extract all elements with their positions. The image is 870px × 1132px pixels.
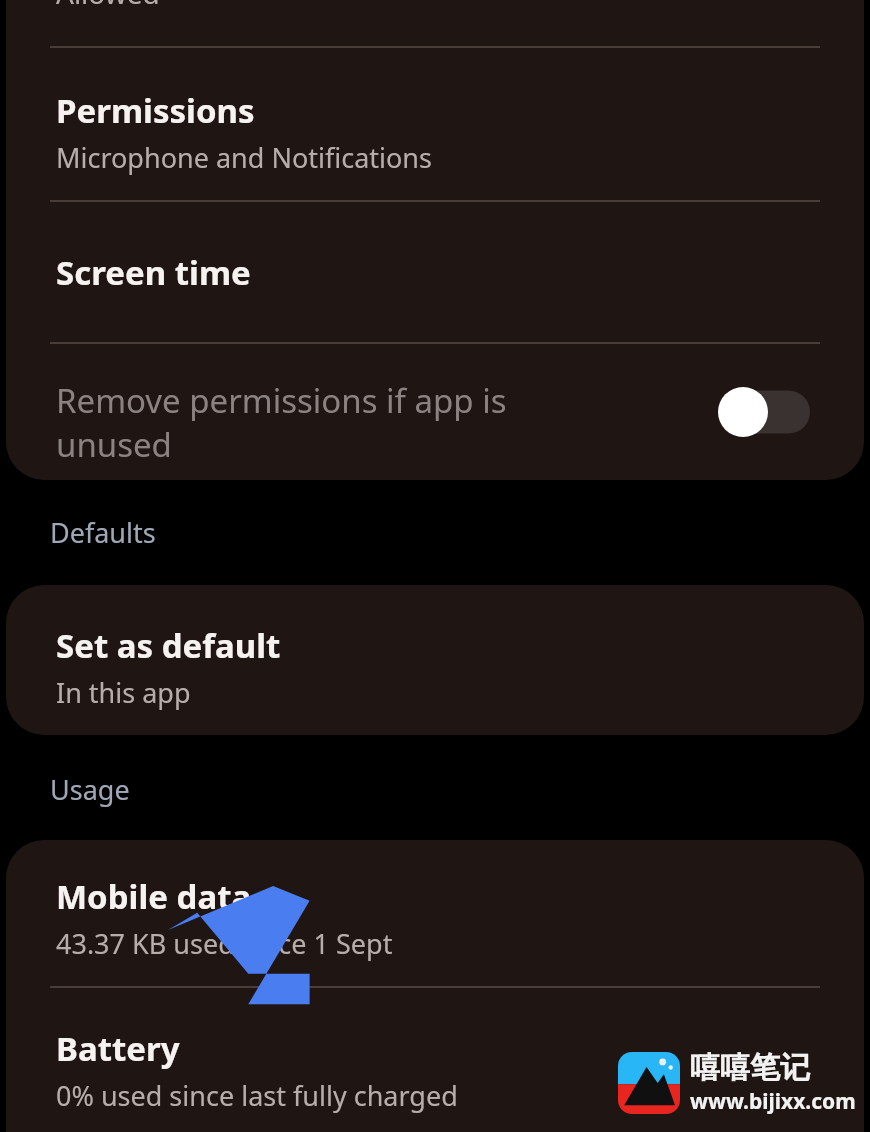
button[interactable]: Remove permissions if app is unused: [6, 344, 864, 480]
staticText: Battery: [56, 1026, 180, 1071]
staticText: 0% used since last fully charged: [56, 1077, 458, 1114]
staticText: 43.37 KB used since 1 Sept: [56, 925, 393, 962]
staticText: Usage: [50, 771, 130, 808]
button[interactable]: Permissions: [6, 48, 864, 200]
staticText: Remove permissions if app is unused: [56, 378, 507, 466]
staticText: Permissions: [56, 88, 255, 133]
staticText: Defaults: [50, 514, 156, 551]
button[interactable]: Screen time: [6, 202, 864, 342]
staticText: www.bijixx.com: [690, 1087, 856, 1116]
button[interactable]: Allowed: [6, 0, 864, 46]
staticText: Allowed: [56, 0, 160, 12]
staticText: Screen time: [56, 250, 251, 295]
button[interactable]: Battery: [6, 988, 864, 1132]
staticText: Mobile data: [56, 874, 252, 919]
button[interactable]: Mobile data: [6, 840, 864, 986]
staticText: Microphone and Notifications: [56, 139, 432, 176]
button[interactable]: Set as default: [6, 585, 864, 735]
staticText: 嘻嘻笔记: [690, 1049, 810, 1087]
staticText: In this app: [56, 674, 191, 711]
staticText: Set as default: [56, 623, 281, 668]
button[interactable]: Remove permissions if app is unused togg…: [718, 387, 810, 437]
